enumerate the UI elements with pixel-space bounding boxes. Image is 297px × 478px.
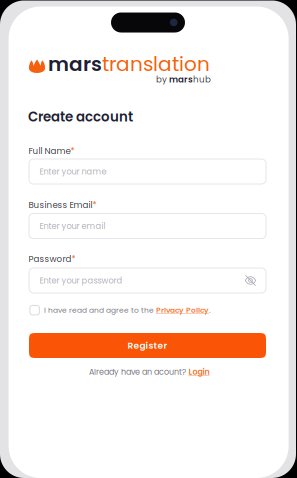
staticText: Business Email (28, 199, 92, 211)
staticText: Privacy Policy (156, 305, 209, 315)
staticText: Already have an acount? (89, 366, 186, 378)
staticText: I have read and agree to the (44, 305, 156, 315)
staticText: * (92, 199, 96, 211)
button[interactable]: Enter your email (29, 213, 266, 238)
button[interactable]: I have read and agree to the (30, 305, 211, 315)
staticText: Login (188, 366, 209, 378)
staticText: Password (28, 253, 71, 265)
staticText: * (70, 145, 74, 157)
button[interactable]: Enter your name (29, 159, 266, 184)
staticText: * (71, 253, 75, 265)
staticText: hub (193, 73, 211, 86)
staticText: mars (48, 50, 102, 78)
staticText: Full Name (28, 145, 70, 157)
staticText: Enter your email (39, 220, 105, 232)
staticText: . (209, 305, 211, 315)
button[interactable]: Login (188, 366, 209, 378)
button[interactable]: Enter your password (29, 268, 266, 293)
button[interactable]: Register (29, 333, 266, 358)
staticText: Create account (28, 107, 133, 126)
staticText: Enter your password (39, 275, 122, 286)
staticText: translation (102, 50, 210, 78)
staticText: Register (127, 339, 167, 352)
staticText: mars (169, 73, 193, 86)
staticText: Enter your name (39, 166, 106, 177)
staticText: by (156, 73, 169, 86)
